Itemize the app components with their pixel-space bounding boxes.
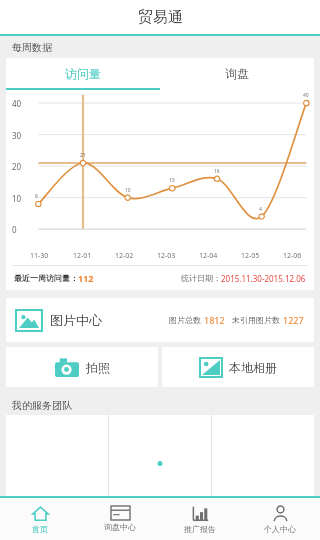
staticText: 拍照: [86, 360, 110, 375]
staticText: 0: [12, 224, 17, 235]
button[interactable]: 首页: [0, 498, 80, 540]
staticText: 首页: [32, 524, 48, 534]
staticText: 10: [12, 193, 22, 204]
other: 询盘中心: [111, 506, 130, 520]
button[interactable]: 个人中心: [240, 498, 320, 540]
other: 首页: [32, 505, 49, 522]
staticText: 112: [78, 272, 94, 284]
staticText: 图片中心: [50, 312, 102, 328]
staticText: 2015.11.30-2015.12.06: [221, 273, 306, 284]
staticText: 个人中心: [264, 524, 296, 534]
staticText: 16: [214, 168, 220, 175]
staticText: 最近一周访问量：: [14, 273, 78, 283]
button[interactable]: 询盘: [160, 58, 314, 88]
button[interactable]: 推广报告: [160, 498, 240, 540]
staticText: 贸易通: [138, 8, 183, 27]
staticText: 11-30: [30, 251, 49, 261]
staticText: 40: [12, 98, 22, 109]
staticText: 20: [12, 161, 22, 172]
staticText: 1812: [204, 314, 225, 326]
staticText: 8: [35, 193, 38, 200]
staticText: 我的服务团队: [12, 399, 72, 412]
button[interactable]: 拍照: [6, 347, 158, 387]
staticText: 询盘中心: [104, 522, 136, 532]
staticText: 推广报告: [184, 524, 216, 534]
button[interactable]: 本地相册: [162, 347, 314, 387]
other: 个人中心: [272, 505, 289, 522]
staticText: 本地相册: [229, 360, 277, 375]
staticText: 每周数据: [12, 41, 52, 54]
other: 拍照: [55, 358, 79, 377]
staticText: 40: [303, 92, 309, 99]
staticText: 12-04: [199, 251, 218, 261]
staticText: 4: [259, 206, 262, 213]
staticText: 13: [169, 177, 175, 184]
other: 本地相册: [200, 358, 222, 377]
staticText: 10: [125, 187, 131, 194]
staticText: 12-06: [283, 251, 302, 261]
staticText: 统计日期：: [181, 273, 221, 283]
staticText: 未引用图片数: [232, 315, 280, 325]
other: 图片中心: [16, 310, 42, 331]
staticText: 12-01: [73, 251, 92, 261]
button[interactable]: 图片中心: [6, 298, 314, 342]
staticText: 12-03: [157, 251, 176, 261]
staticText: 30: [12, 130, 22, 141]
staticText: 12-05: [241, 251, 260, 261]
other: 推广报告: [192, 505, 209, 522]
staticText: 12-02: [115, 251, 134, 261]
staticText: 21: [80, 152, 86, 159]
button[interactable]: 询盘中心: [80, 498, 160, 540]
staticText: 1227: [283, 314, 304, 326]
button[interactable]: 访问量: [6, 58, 160, 88]
staticText: 图片总数: [169, 315, 201, 325]
staticText: 询盘: [225, 66, 249, 81]
staticText: 访问量: [65, 66, 101, 81]
